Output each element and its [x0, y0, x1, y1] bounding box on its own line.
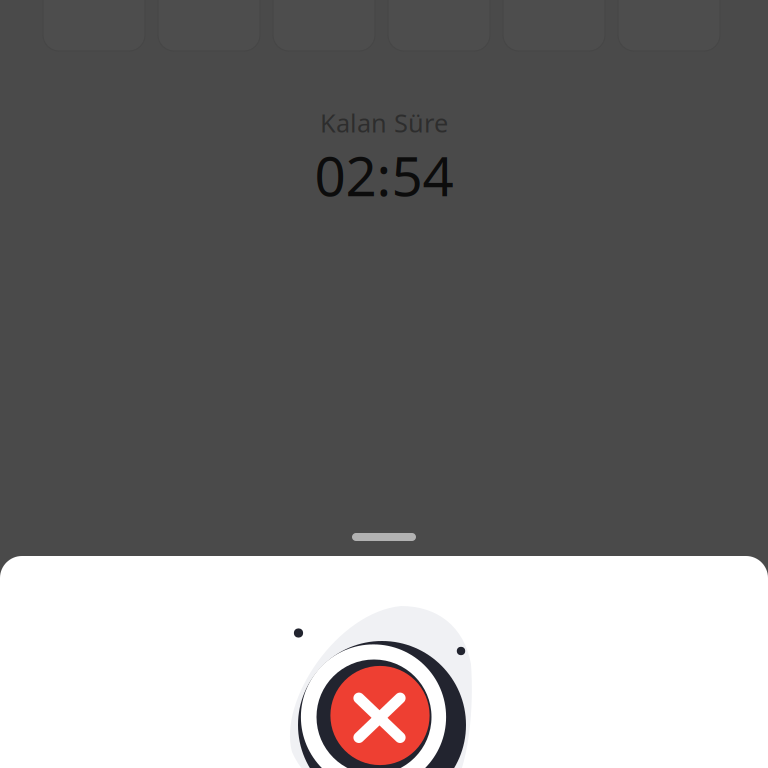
staticText: Kalan Süre — [320, 106, 448, 139]
staticText: 02:54 — [314, 139, 453, 211]
